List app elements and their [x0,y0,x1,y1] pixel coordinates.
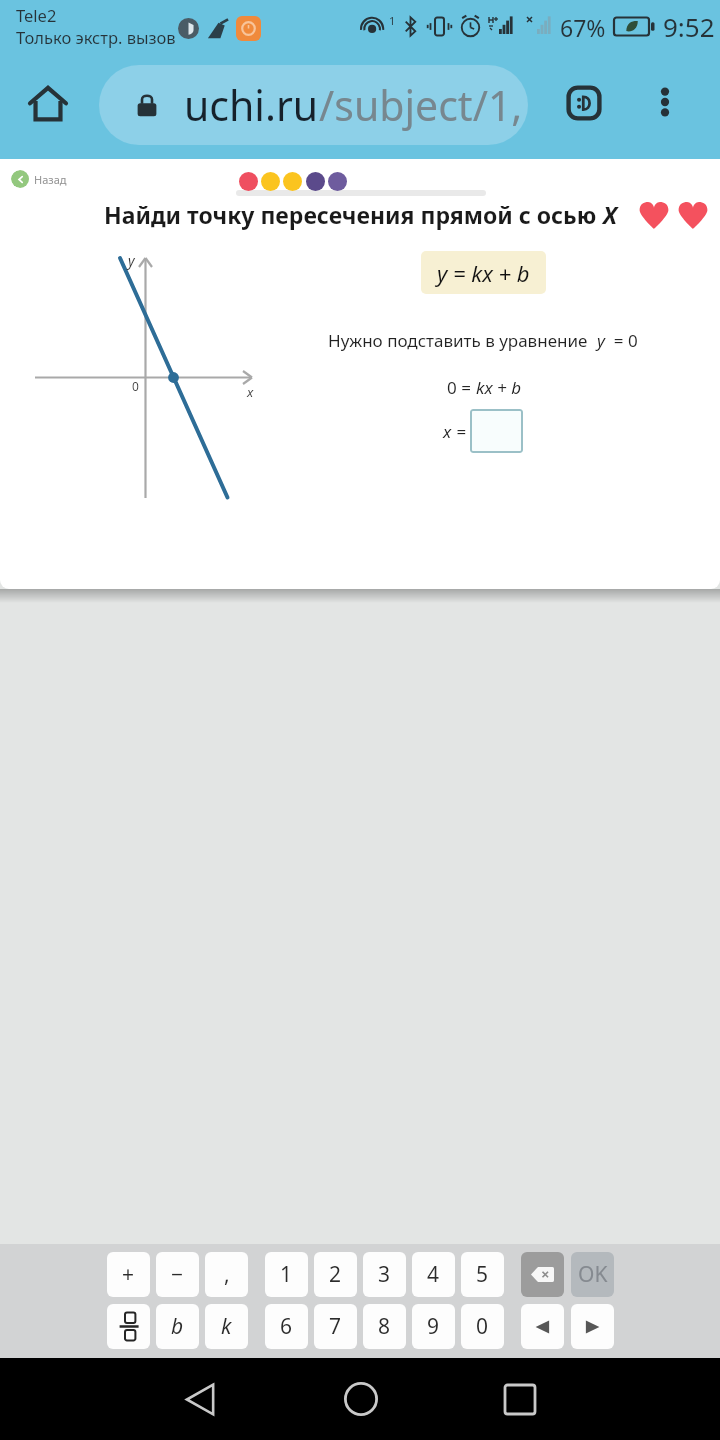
button[interactable]: More options [632,69,698,135]
staticText: 7 [329,1312,342,1341]
staticText: Только экстр. вызов [16,26,176,48]
staticText: 8 [378,1312,391,1341]
staticText: 9 [427,1312,440,1341]
staticText: Назад [34,172,67,187]
staticText: y [597,329,605,352]
button[interactable]: uchi.ru [99,65,528,145]
staticText: 1 [389,13,396,28]
staticText: 2 [329,1260,342,1289]
button[interactable]: k [205,1304,248,1349]
staticText: x [247,383,254,401]
staticText: 67% [560,12,606,43]
button[interactable]: + [107,1252,150,1297]
button[interactable]: Left [521,1304,564,1349]
button[interactable]: OK [571,1252,614,1297]
button[interactable]: , [205,1252,248,1297]
button[interactable]: 5 [461,1252,504,1297]
button[interactable]: Recents [480,1358,560,1440]
staticText: y [128,251,135,270]
staticText: b [171,1312,184,1341]
staticText: 4 [427,1260,440,1289]
button[interactable]: 1 [265,1252,308,1297]
staticText: kx + b [476,376,522,399]
staticText: k [221,1312,232,1341]
staticText: 0 [476,1312,489,1341]
staticText: = [452,420,467,443]
button[interactable]: Tabs [551,70,617,136]
staticText: = 0 [605,329,638,352]
staticText: 6 [280,1312,293,1341]
button[interactable]: 8 [363,1304,406,1349]
button[interactable]: Назад [11,170,73,188]
button[interactable]: Right [571,1304,614,1349]
button[interactable]: Answer field [470,409,523,453]
button[interactable]: b [156,1304,199,1349]
staticText: /subject/1, [319,77,523,133]
button[interactable]: Fraction [107,1304,150,1349]
button[interactable]: 3 [363,1252,406,1297]
button[interactable]: 0 [461,1304,504,1349]
button[interactable]: 9 [412,1304,455,1349]
button[interactable]: Home [321,1358,401,1440]
staticText: 1 [280,1260,293,1289]
button[interactable]: 6 [265,1304,308,1349]
button[interactable]: 4 [412,1252,455,1297]
button[interactable]: 2 [314,1252,357,1297]
button[interactable]: Home [14,70,82,138]
staticText: + [122,1260,135,1289]
staticText: x [443,420,452,443]
staticText: uchi.ru [184,77,319,133]
staticText: , [224,1260,230,1289]
staticText: Нужно подставить в уравнение [328,329,597,352]
staticText: Найди точку пересечения прямой с осью [104,199,603,230]
button[interactable]: 7 [314,1304,357,1349]
staticText: 0 [132,378,139,394]
button[interactable]: Back [160,1358,240,1440]
staticText: OK [578,1260,608,1289]
button[interactable]: − [156,1252,199,1297]
staticText: Tele2 [16,4,57,26]
staticText: 9:52 [663,9,715,44]
staticText: 5 [476,1260,489,1289]
staticText: 3 [378,1260,391,1289]
staticText: X [603,199,618,230]
staticText: y = kx + b [437,258,530,288]
staticText: 0 = [447,376,476,399]
staticText: − [171,1260,184,1289]
button[interactable]: Backspace [521,1252,564,1297]
